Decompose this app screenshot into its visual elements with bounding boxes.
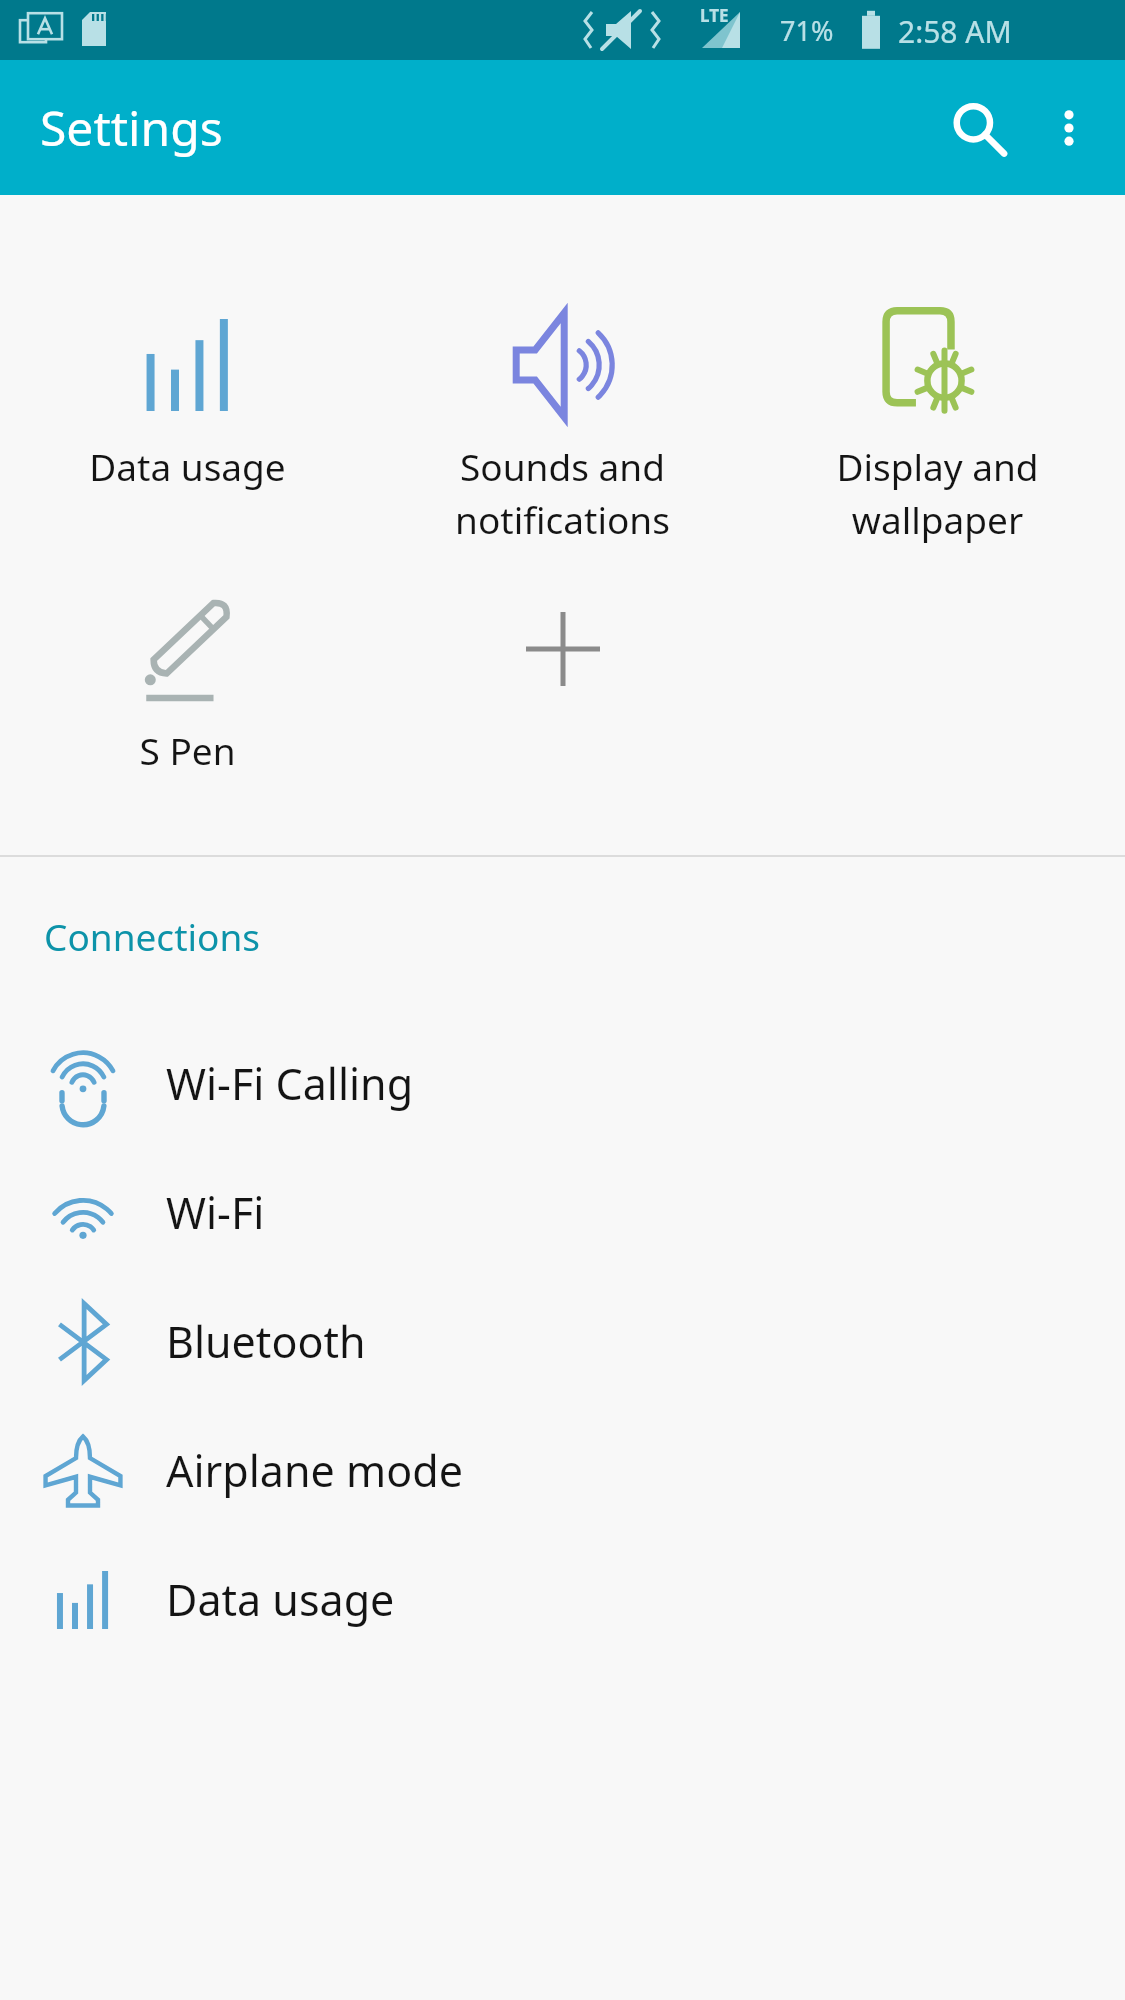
staticText: Wi-Fi <box>166 1183 265 1242</box>
button[interactable]: S Pen <box>0 589 375 775</box>
staticText: Bluetooth <box>166 1312 366 1371</box>
button[interactable]: Airplane mode <box>0 1406 1125 1535</box>
button[interactable]: Wi-Fi Calling <box>0 1019 1125 1148</box>
button[interactable]: Data usage <box>0 305 375 491</box>
staticText: Airplane mode <box>166 1441 463 1500</box>
button[interactable]: Data usage <box>0 1535 1125 1664</box>
button[interactable]: Sounds and notifications <box>375 305 750 545</box>
button[interactable]: Wi-Fi <box>0 1148 1125 1277</box>
staticText: Data usage <box>166 1570 395 1629</box>
staticText: 2:58 AM <box>898 11 1012 52</box>
button[interactable]: Display and wallpaper <box>750 305 1125 545</box>
button[interactable]: Bluetooth <box>0 1277 1125 1406</box>
staticText: Connections <box>44 911 261 961</box>
staticText: Data usage <box>89 441 286 491</box>
staticText: Wi-Fi Calling <box>166 1054 414 1113</box>
staticText: Settings <box>40 95 223 160</box>
button[interactable]: Search <box>929 80 1025 176</box>
staticText: LTE <box>700 4 729 27</box>
staticText: Sounds and notifications <box>455 441 670 545</box>
staticText: Display and wallpaper <box>836 441 1039 545</box>
other: Add shortcut <box>526 589 600 709</box>
button[interactable]: More options <box>1025 84 1113 172</box>
staticText: 71% <box>780 12 834 49</box>
button[interactable]: Add shortcut <box>375 589 750 709</box>
staticText: S Pen <box>139 725 236 775</box>
